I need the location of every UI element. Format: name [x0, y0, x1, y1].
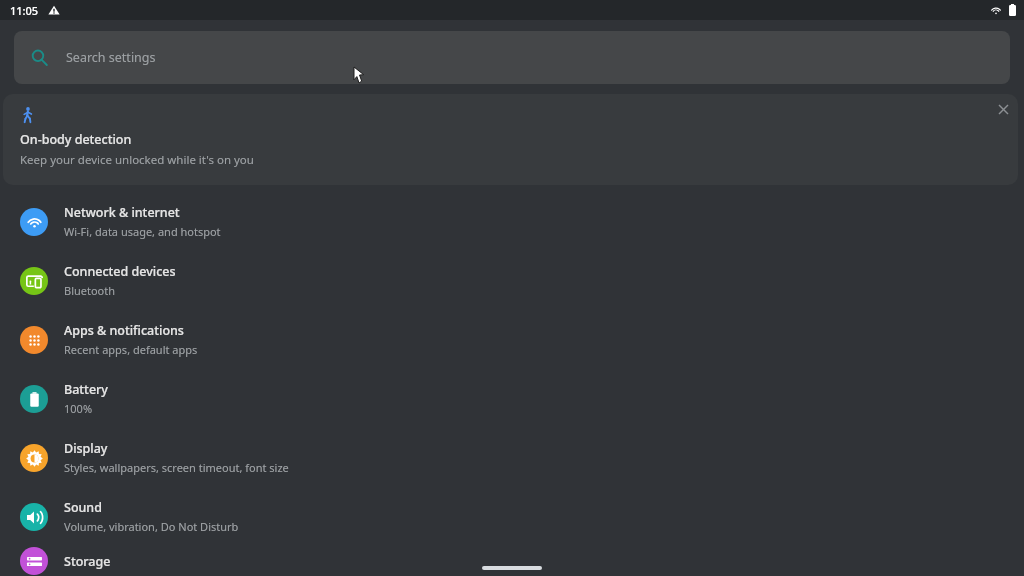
button[interactable]: Sound — [0, 487, 1024, 546]
button[interactable]: Connected devices — [0, 251, 1024, 310]
staticText: Styles, wallpapers, screen timeout, font… — [64, 460, 289, 475]
button[interactable]: On-body detection — [3, 94, 1018, 185]
staticText: On-body detection — [20, 131, 132, 148]
button[interactable]: Dismiss suggestion — [988, 94, 1018, 124]
staticText: Network & internet — [64, 204, 180, 221]
staticText: Search settings — [66, 49, 156, 66]
staticText: Volume, vibration, Do Not Disturb — [64, 519, 239, 534]
staticText: 11:05 — [10, 3, 39, 18]
button[interactable]: Search settings — [14, 31, 1010, 84]
staticText: Keep your device unlocked while it's on … — [20, 152, 254, 168]
staticText: Sound — [64, 499, 102, 516]
staticText: Storage — [64, 553, 111, 570]
button[interactable]: Battery — [0, 369, 1024, 428]
staticText: Battery — [64, 381, 108, 398]
staticText: Connected devices — [64, 263, 176, 280]
staticText: Display — [64, 440, 108, 457]
staticText: 100% — [64, 401, 93, 416]
button[interactable]: Display — [0, 428, 1024, 487]
button[interactable]: Network & internet — [0, 192, 1024, 251]
staticText: Wi-Fi, data usage, and hotspot — [64, 224, 221, 239]
staticText: Bluetooth — [64, 283, 116, 298]
staticText: Recent apps, default apps — [64, 342, 198, 357]
button[interactable]: Apps & notifications — [0, 310, 1024, 369]
button[interactable]: Storage — [0, 546, 1024, 576]
staticText: Apps & notifications — [64, 322, 184, 339]
